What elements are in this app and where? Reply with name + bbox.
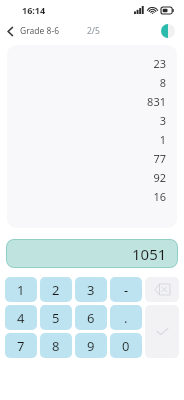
staticText: . [124, 309, 128, 327]
button[interactable]: Back [0, 23, 63, 39]
button[interactable]: Progress [161, 24, 175, 38]
staticText: Grade 8-6 [20, 25, 59, 37]
staticText: 16:14 [22, 4, 46, 16]
button[interactable]: 9 [75, 333, 107, 358]
staticText: 1 [17, 281, 25, 299]
button[interactable]: 3 [75, 277, 107, 302]
staticText: 831 [147, 94, 166, 109]
button[interactable]: 4 [5, 305, 37, 330]
button[interactable]: 1 [5, 277, 37, 302]
button[interactable]: 6 [75, 305, 107, 330]
staticText: - [124, 281, 129, 299]
button[interactable]: 7 [5, 333, 37, 358]
button[interactable]: 1051 [6, 239, 178, 268]
staticText: 2 [52, 281, 60, 299]
staticText: 2/5 [87, 25, 100, 37]
staticText: 92 [153, 170, 166, 185]
staticText: 3 [159, 113, 166, 128]
button[interactable]: 0 [110, 333, 142, 358]
staticText: 23 [153, 56, 166, 71]
staticText: 7 [17, 337, 25, 355]
button[interactable]: 5 [40, 305, 72, 330]
button[interactable]: Backspace [145, 277, 179, 302]
staticText: 3 [87, 281, 95, 299]
staticText: 1051 [132, 244, 167, 264]
staticText: 16 [153, 189, 166, 204]
button[interactable]: 8 [40, 333, 72, 358]
staticText: 77 [153, 151, 166, 166]
button[interactable]: - [110, 277, 142, 302]
staticText: 9 [87, 337, 95, 355]
staticText: 4 [17, 309, 25, 327]
staticText: 0 [122, 337, 130, 355]
button[interactable]: . [110, 305, 142, 330]
button[interactable]: 2 [40, 277, 72, 302]
staticText: 5 [52, 309, 60, 327]
staticText: 8 [159, 75, 166, 90]
staticText: 1 [159, 132, 166, 147]
staticText: 6 [87, 309, 95, 327]
staticText: 8 [52, 337, 60, 355]
